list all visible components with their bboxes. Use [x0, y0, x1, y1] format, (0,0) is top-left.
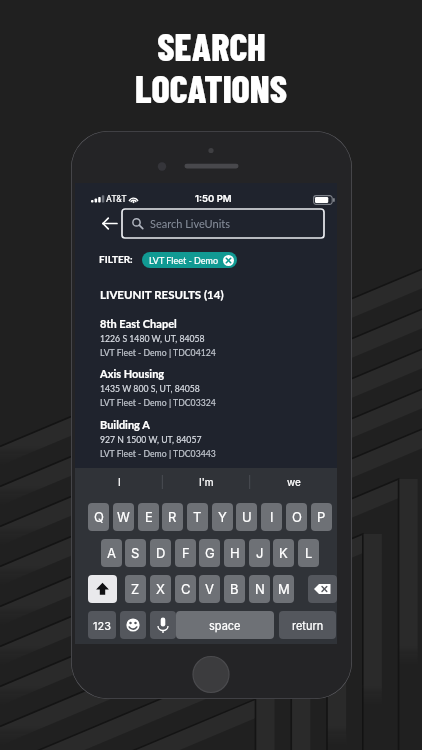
button[interactable]: return — [279, 611, 336, 639]
staticText: U — [242, 509, 252, 525]
staticText: 927 N 1500 W, UT, 84057 — [100, 434, 202, 444]
button[interactable]: F — [175, 539, 196, 567]
button[interactable]: R — [162, 503, 183, 531]
staticText: H — [230, 545, 240, 561]
staticText: A — [107, 545, 116, 561]
staticText: K — [279, 545, 288, 561]
button[interactable]: 123 — [88, 611, 116, 639]
staticText: space — [209, 619, 241, 632]
staticText: B — [230, 581, 239, 597]
button[interactable]: A — [101, 539, 122, 567]
staticText: D — [156, 545, 166, 561]
button[interactable]: H — [224, 539, 245, 567]
staticText: FILTER: — [99, 253, 133, 265]
staticText: F — [182, 545, 190, 561]
button[interactable]: O — [286, 503, 307, 531]
staticText: E — [145, 509, 153, 525]
button[interactable]: Emoji — [120, 611, 146, 639]
button[interactable]: Y — [212, 503, 233, 531]
staticText: J — [256, 545, 264, 561]
staticText: N — [255, 581, 265, 597]
button[interactable]: Q — [88, 503, 109, 531]
staticText: 8th East Chapel — [100, 317, 177, 330]
staticText: R — [168, 509, 177, 525]
button[interactable]: we — [250, 468, 337, 496]
staticText: I — [118, 476, 121, 488]
staticText: Building A — [100, 418, 150, 431]
button[interactable]: Dictate — [150, 611, 176, 639]
button[interactable]: V — [199, 575, 220, 603]
staticText: O — [292, 509, 302, 525]
staticText: AT&T — [106, 194, 127, 204]
button[interactable]: I'm — [163, 468, 250, 496]
button[interactable]: LVT Fleet - Demo — [142, 252, 237, 268]
staticText: I — [270, 509, 274, 525]
button[interactable]: Back — [97, 209, 121, 237]
staticText: Axis Housing — [100, 367, 165, 380]
button[interactable]: N — [249, 575, 270, 603]
staticText: we — [287, 476, 301, 488]
staticText: return — [292, 619, 324, 632]
staticText: Search LiveUnits — [150, 217, 231, 230]
staticText: Z — [131, 581, 140, 597]
button[interactable]: X — [150, 575, 171, 603]
staticText: SEARCH — [157, 23, 266, 69]
staticText: Y — [218, 509, 227, 525]
button[interactable]: J — [249, 539, 270, 567]
button[interactable]: Shift — [88, 575, 117, 603]
staticText: P — [317, 509, 326, 525]
staticText: LOCATIONS — [135, 65, 287, 111]
staticText: W — [117, 509, 130, 525]
button[interactable]: S — [125, 539, 146, 567]
button[interactable]: E — [138, 503, 159, 531]
button[interactable]: Axis Housing — [100, 367, 305, 407]
button[interactable]: I — [75, 468, 163, 496]
staticText: LVT Fleet - Demo | TDC04124 — [100, 347, 216, 357]
button[interactable]: W — [113, 503, 134, 531]
button[interactable]: T — [187, 503, 208, 531]
staticText: T — [193, 509, 202, 525]
staticText: 1:50 PM — [195, 193, 232, 204]
staticText: V — [205, 581, 214, 597]
staticText: I'm — [199, 476, 214, 488]
button[interactable]: L — [298, 539, 319, 567]
button[interactable]: 8th East Chapel — [100, 317, 305, 357]
button[interactable]: Z — [125, 575, 146, 603]
staticText: LIVEUNIT RESULTS (14) — [100, 288, 224, 302]
button[interactable]: space — [176, 611, 274, 639]
button[interactable]: G — [199, 539, 220, 567]
button[interactable]: P — [311, 503, 332, 531]
button[interactable]: D — [150, 539, 171, 567]
staticText: S — [131, 545, 140, 561]
staticText: LVT Fleet - Demo — [149, 255, 219, 266]
button[interactable]: Backspace — [308, 575, 337, 603]
staticText: X — [156, 581, 165, 597]
staticText: LVT Fleet - Demo | TDC03324 — [100, 397, 216, 407]
button[interactable]: K — [273, 539, 294, 567]
staticText: Q — [94, 509, 104, 525]
staticText: LVT Fleet - Demo | TDC03443 — [100, 448, 216, 458]
button[interactable]: Search LiveUnits — [122, 209, 324, 238]
staticText: 123 — [93, 619, 111, 632]
staticText: 1435 W 800 S, UT, 84058 — [100, 383, 200, 393]
staticText: M — [278, 581, 290, 597]
staticText: G — [205, 545, 215, 561]
button[interactable]: M — [273, 575, 294, 603]
button[interactable]: I — [261, 503, 282, 531]
staticText: L — [305, 545, 313, 561]
button[interactable]: Building A — [100, 418, 305, 458]
button[interactable]: B — [224, 575, 245, 603]
staticText: 1226 S 1480 W, UT, 84058 — [100, 333, 205, 343]
button[interactable]: C — [175, 575, 196, 603]
staticText: C — [181, 581, 191, 597]
button[interactable]: U — [236, 503, 257, 531]
